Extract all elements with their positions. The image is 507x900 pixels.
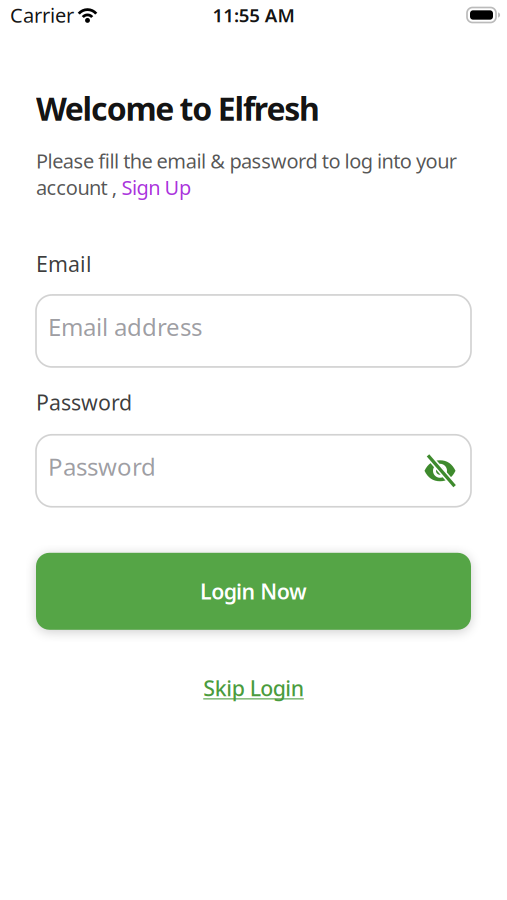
button[interactable]: Login Now [36,553,471,630]
staticText: Sign Up [121,174,191,201]
button[interactable]: Skip Login [203,674,304,702]
staticText: Login Now [200,577,307,605]
staticText: Email [36,250,92,278]
staticText: Please fill the email & password to log … [36,147,457,174]
staticText: Password [36,388,132,416]
staticText: Skip Login [203,674,304,702]
staticText: account , [36,174,121,201]
button[interactable]: Show password [424,454,456,488]
staticText: Carrier [10,2,74,28]
staticText: Password [48,450,156,482]
staticText: 11:55 AM [212,3,294,27]
button[interactable]: Sign Up [121,174,191,201]
staticText: Welcome to Elfresh [36,87,320,129]
staticText: Email address [48,311,202,343]
